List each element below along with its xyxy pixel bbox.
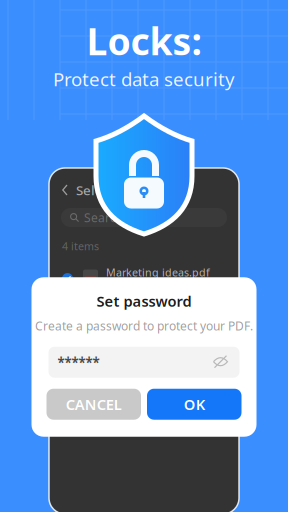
staticText: Protect data security xyxy=(53,67,235,91)
staticText: ****** xyxy=(57,353,99,371)
staticText: Set password xyxy=(96,291,191,311)
staticText: OK xyxy=(184,394,205,414)
staticText: Search... xyxy=(84,209,132,225)
button[interactable]: ****** xyxy=(31,334,256,378)
staticText: Locks: xyxy=(86,16,201,66)
staticText: CANCEL xyxy=(66,394,122,414)
button[interactable]: CANCEL xyxy=(46,389,141,420)
button[interactable]: OK xyxy=(147,389,241,420)
staticText: Create a password to protect your PDF. xyxy=(35,318,253,334)
staticText: 4 items xyxy=(62,239,99,253)
staticText: Marketing ideas.pdf xyxy=(106,265,210,279)
staticText: Select xyxy=(76,181,115,199)
